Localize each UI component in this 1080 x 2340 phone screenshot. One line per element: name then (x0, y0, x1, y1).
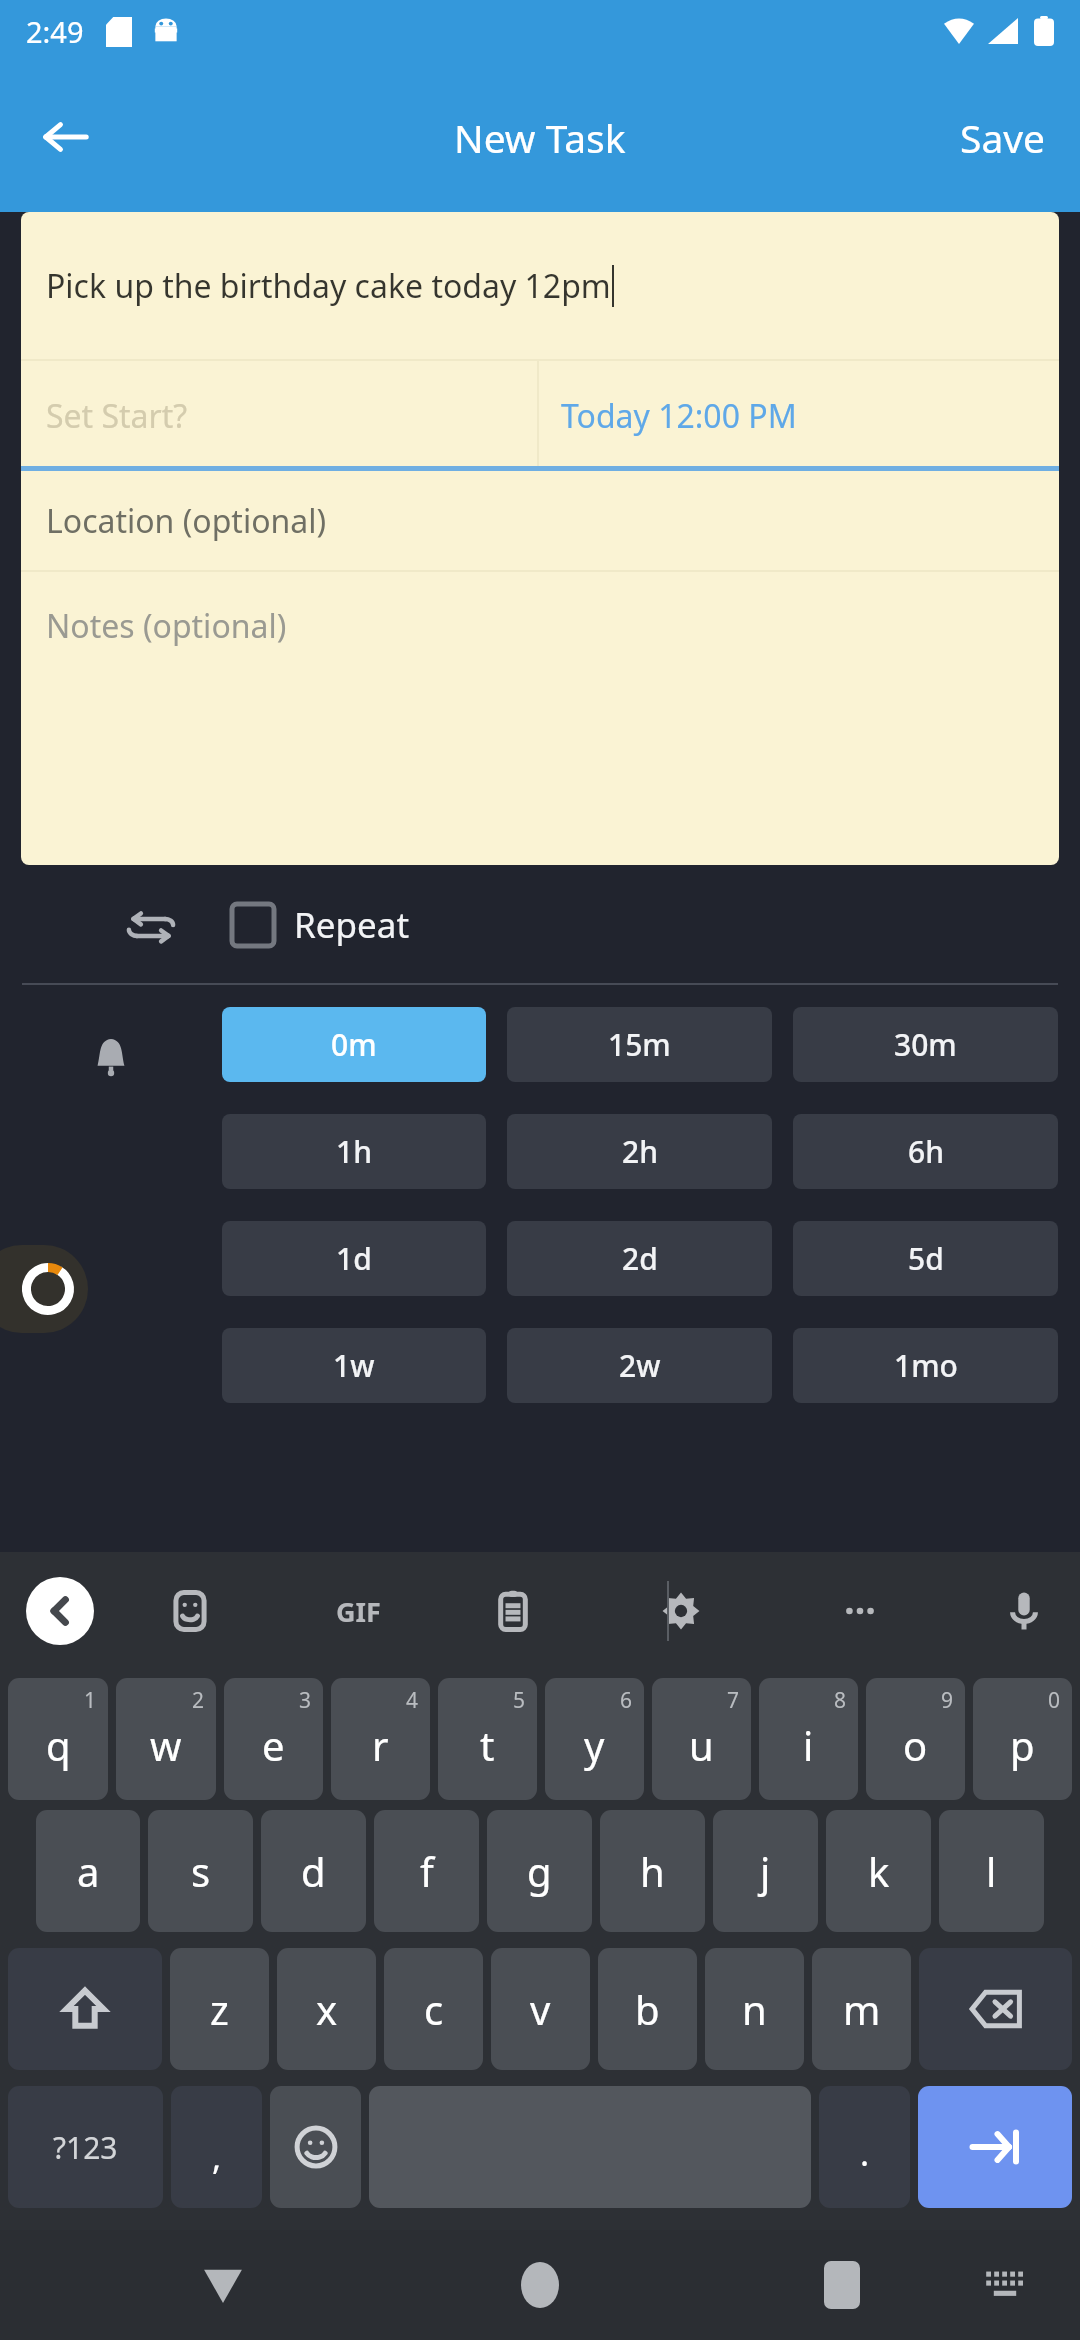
button[interactable]: Home (502, 2247, 578, 2323)
button[interactable]: Back (24, 95, 108, 179)
button[interactable]: More options (830, 1581, 890, 1641)
button[interactable]: . (819, 2086, 910, 2208)
staticText: y (584, 1718, 605, 1772)
button[interactable]: 8 (759, 1678, 858, 1800)
staticText: 2d (622, 1238, 658, 1279)
button[interactable]: 0 (973, 1678, 1072, 1800)
button[interactable]: 5 (438, 1678, 537, 1800)
staticText: Set Start? (46, 394, 188, 438)
button[interactable]: Set Start? (21, 361, 537, 471)
button[interactable]: 1h (222, 1114, 486, 1189)
staticText: 0m (331, 1024, 377, 1065)
button[interactable]: Location (optional) (21, 471, 1059, 570)
button[interactable]: d (261, 1810, 366, 1932)
button[interactable]: 1d (222, 1221, 486, 1296)
staticText: m (843, 1982, 881, 2036)
staticText: t (480, 1718, 495, 1772)
staticText: 8 (834, 1686, 847, 1715)
button[interactable]: 30m (793, 1007, 1058, 1082)
staticText: 1 (84, 1686, 97, 1715)
button[interactable]: 1mo (793, 1328, 1058, 1403)
staticText: f (420, 1844, 434, 1898)
button[interactable]: 9 (866, 1678, 965, 1800)
staticText: . (860, 2130, 870, 2176)
button[interactable]: h (600, 1810, 705, 1932)
button[interactable]: 6 (545, 1678, 644, 1800)
button[interactable]: Back (185, 2247, 261, 2323)
staticText: 1mo (894, 1345, 958, 1386)
button[interactable]: Notes (optional) (21, 572, 1059, 865)
staticText: k (868, 1844, 890, 1898)
button[interactable]: f (374, 1810, 479, 1932)
button[interactable]: 2h (507, 1114, 772, 1189)
button[interactable]: 15m (507, 1007, 772, 1082)
button[interactable]: Enter (918, 2086, 1072, 2208)
button[interactable]: ?123 (8, 2086, 163, 2208)
button[interactable]: k (826, 1810, 931, 1932)
staticText: h (640, 1844, 665, 1898)
button[interactable]: Timer overlay (0, 1245, 88, 1333)
staticText: 1h (336, 1131, 372, 1172)
button[interactable]: 1 (8, 1678, 108, 1800)
button[interactable]: c (384, 1948, 483, 2070)
button[interactable]: Clipboard (483, 1581, 543, 1641)
staticText: 3 (299, 1686, 312, 1715)
button[interactable]: 3 (224, 1678, 323, 1800)
button[interactable]: x (277, 1948, 376, 2070)
button[interactable]: Shift (8, 1948, 162, 2070)
button[interactable]: Voice input (994, 1581, 1054, 1641)
button[interactable]: 4 (331, 1678, 430, 1800)
button[interactable]: g (487, 1810, 592, 1932)
button[interactable]: v (491, 1948, 590, 2070)
staticText: 30m (894, 1024, 957, 1065)
staticText: e (262, 1718, 285, 1772)
button[interactable]: Repeat (230, 893, 430, 957)
button[interactable]: z (170, 1948, 269, 2070)
button[interactable]: Emoji (270, 2086, 361, 2208)
staticText: 0 (1048, 1686, 1061, 1715)
button[interactable]: 2d (507, 1221, 772, 1296)
button[interactable]: 7 (652, 1678, 751, 1800)
button[interactable]: m (812, 1948, 911, 2070)
button[interactable]: j (713, 1810, 818, 1932)
staticText: GIF (336, 1593, 381, 1630)
staticText: Today 12:00 PM (561, 394, 797, 438)
button[interactable]: Stickers (160, 1581, 220, 1641)
staticText: z (210, 1982, 229, 2036)
staticText: 1w (333, 1345, 375, 1386)
button[interactable]: 2 (116, 1678, 216, 1800)
staticText: j (760, 1844, 771, 1898)
button[interactable]: Pick up the birthday cake today 12pm (21, 212, 1059, 359)
staticText: 1d (336, 1238, 372, 1279)
button[interactable]: b (598, 1948, 697, 2070)
button[interactable]: 1w (222, 1328, 486, 1403)
staticText: x (316, 1982, 338, 2036)
button[interactable]: Save (948, 101, 1058, 174)
staticText: Notes (optional) (46, 604, 287, 648)
button[interactable]: Switch keyboard (972, 2252, 1038, 2318)
button[interactable]: 2w (507, 1328, 772, 1403)
staticText: v (530, 1982, 551, 2036)
button[interactable]: n (705, 1948, 804, 2070)
button[interactable]: a (36, 1810, 140, 1932)
button[interactable]: Settings (651, 1581, 711, 1641)
staticText: l (986, 1844, 997, 1898)
button[interactable]: l (939, 1810, 1044, 1932)
staticText: b (635, 1982, 660, 2036)
staticText: q (46, 1718, 71, 1772)
button[interactable]: Backspace (919, 1948, 1072, 2070)
button[interactable]: 0m (222, 1007, 486, 1082)
staticText: Pick up the birthday cake today 12pm (46, 264, 611, 308)
staticText: 15m (608, 1024, 671, 1065)
button[interactable]: 6h (793, 1114, 1058, 1189)
button[interactable]: Close toolbar (26, 1577, 94, 1645)
staticText: w (150, 1718, 182, 1772)
staticText: s (191, 1844, 211, 1898)
button[interactable]: GIF (330, 1587, 387, 1636)
button[interactable]: , (171, 2086, 262, 2208)
button[interactable]: Recents (804, 2247, 880, 2323)
button[interactable]: Today 12:00 PM (539, 361, 1059, 471)
button[interactable]: 5d (793, 1221, 1058, 1296)
button[interactable]: s (148, 1810, 253, 1932)
